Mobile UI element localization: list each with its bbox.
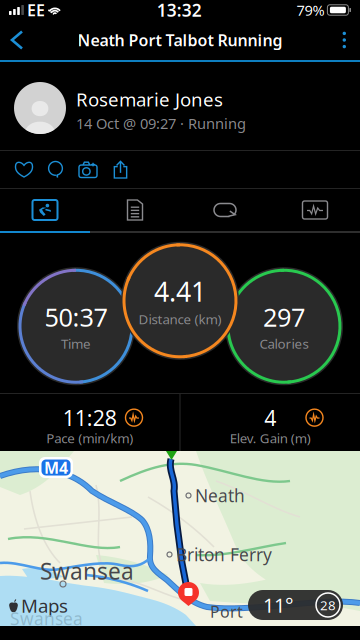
staticText: 297 [263,300,305,334]
staticText: 11° [263,592,294,618]
button[interactable]: Back [0,20,34,60]
button[interactable]: Comment [40,151,71,188]
staticText: 79% [296,0,324,20]
staticText: 11:28 [63,403,117,432]
staticText: 4 [264,403,276,432]
staticText: 50:37 [44,300,107,334]
staticText: Elev. Gain (m) [230,429,311,447]
staticText: 13:32 [157,0,202,21]
button[interactable]: Like [8,151,40,188]
staticText: Distance (km) [138,310,221,328]
button[interactable]: More options [329,20,360,60]
staticText: Neath [195,484,245,507]
staticText: Pace (min/km) [46,429,133,447]
staticText: Briton Ferry [176,543,272,566]
staticText: M4 [44,457,68,478]
button[interactable]: Laps [180,189,270,231]
button[interactable]: Share [105,151,136,188]
staticText: Calories [259,335,308,352]
staticText: Rosemarie Jones [76,87,223,112]
staticText: Swansea [10,607,83,630]
staticText: EE [27,0,45,21]
button[interactable]: Charts [270,189,360,231]
staticText: Port [210,601,243,622]
button[interactable]: Activity summary [0,189,90,231]
staticText: 28 [320,596,336,614]
button[interactable]: Add photo [71,151,105,188]
button[interactable]: Details [90,189,180,231]
staticText: Time [61,335,91,352]
staticText: Neath Port Talbot Running [77,29,282,51]
staticText: 4.41 [154,274,206,309]
staticText: Maps [21,593,68,618]
staticText: Swansea [40,556,134,586]
staticText: 14 Oct @ 09:27 · Running [76,114,246,133]
